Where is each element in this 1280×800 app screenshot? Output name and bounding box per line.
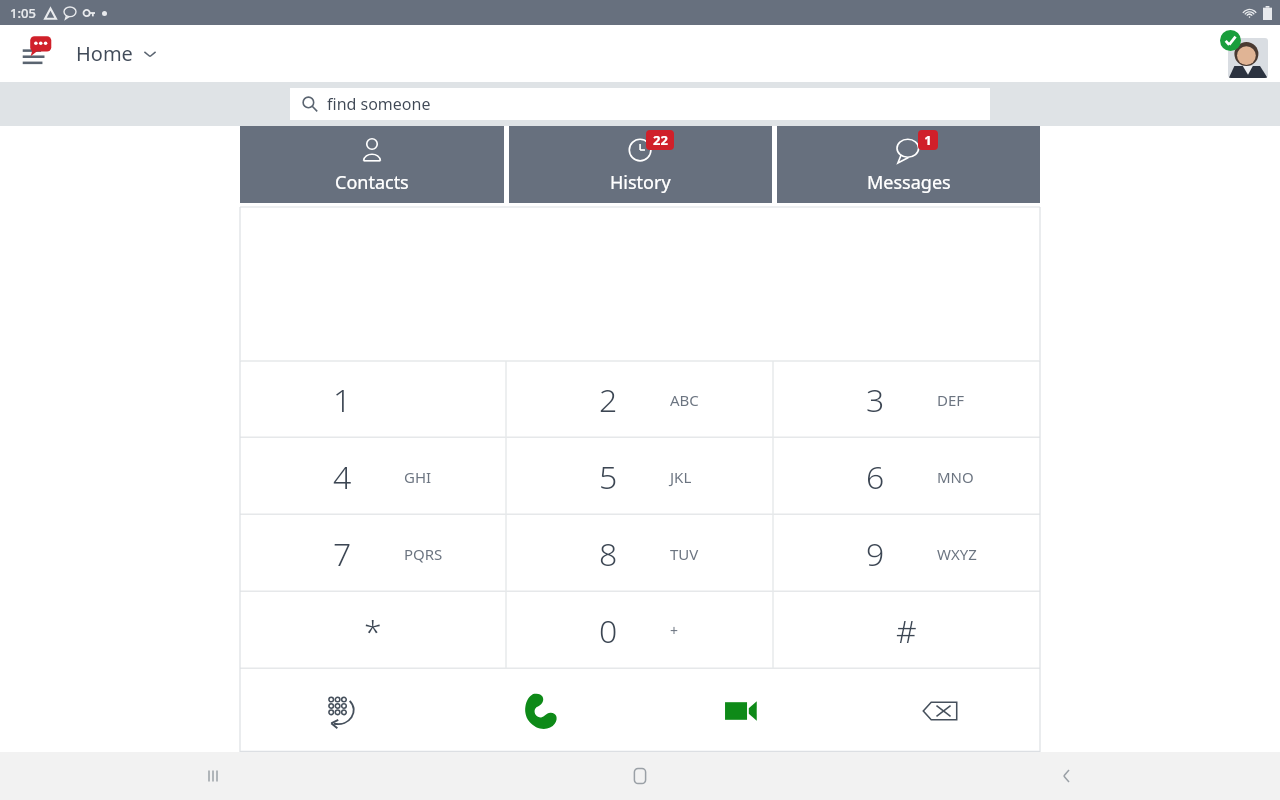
staticText: WXYZ <box>937 544 977 564</box>
button[interactable]: # <box>773 592 1040 669</box>
staticText: Contacts <box>335 170 409 195</box>
button[interactable]: 6 <box>773 438 1040 515</box>
button[interactable]: 1 <box>240 361 506 438</box>
button[interactable]: Menu <box>14 31 60 77</box>
staticText: ABC <box>670 390 699 410</box>
staticText: MNO <box>937 467 974 487</box>
staticText: + <box>670 621 679 640</box>
staticText: Home <box>76 40 133 67</box>
staticText: GHI <box>404 467 432 487</box>
staticText: Messages <box>867 170 951 195</box>
staticText: 1 <box>924 131 932 149</box>
button[interactable]: Backspace <box>840 669 1040 752</box>
button[interactable]: find someone <box>290 88 990 120</box>
button[interactable]: Home <box>426 752 853 800</box>
button[interactable]: 2 <box>506 361 773 438</box>
staticText: JKL <box>670 467 692 487</box>
staticText: 2 <box>599 378 618 422</box>
button[interactable]: 9 <box>773 515 1040 592</box>
button[interactable]: Home <box>76 40 157 67</box>
staticText: 6 <box>866 455 885 499</box>
button[interactable]: Contacts <box>240 126 504 203</box>
staticText: TUV <box>670 544 699 564</box>
staticText: 4 <box>333 455 352 499</box>
staticText: 8 <box>599 532 618 576</box>
button[interactable]: Recents <box>0 752 426 800</box>
button[interactable]: 8 <box>506 515 773 592</box>
staticText: History <box>610 170 671 195</box>
button[interactable]: * <box>240 592 506 669</box>
staticText: # <box>896 609 917 653</box>
staticText: 0 <box>599 609 618 653</box>
staticText: 7 <box>333 532 352 576</box>
staticText: 22 <box>653 131 668 149</box>
button[interactable]: 0 <box>506 592 773 669</box>
button[interactable]: Call <box>440 669 640 752</box>
staticText: 3 <box>866 378 885 422</box>
staticText: DEF <box>937 390 965 410</box>
staticText: 1 <box>333 378 352 422</box>
button[interactable]: Hide keypad <box>240 669 440 752</box>
button[interactable]: 7 <box>240 515 506 592</box>
staticText: 1:05 <box>10 4 36 22</box>
staticText: * <box>364 609 382 653</box>
button[interactable]: 4 <box>240 438 506 515</box>
staticText: PQRS <box>404 544 443 564</box>
button[interactable]: 5 <box>506 438 773 515</box>
button[interactable]: 3 <box>773 361 1040 438</box>
button[interactable]: 1 <box>777 126 1040 203</box>
staticText: 5 <box>599 455 618 499</box>
button[interactable]: Profile <box>1220 30 1268 78</box>
button[interactable]: 22 <box>509 126 772 203</box>
staticText: find someone <box>327 93 431 115</box>
staticText: 9 <box>866 532 885 576</box>
button[interactable]: Video call <box>640 669 840 752</box>
